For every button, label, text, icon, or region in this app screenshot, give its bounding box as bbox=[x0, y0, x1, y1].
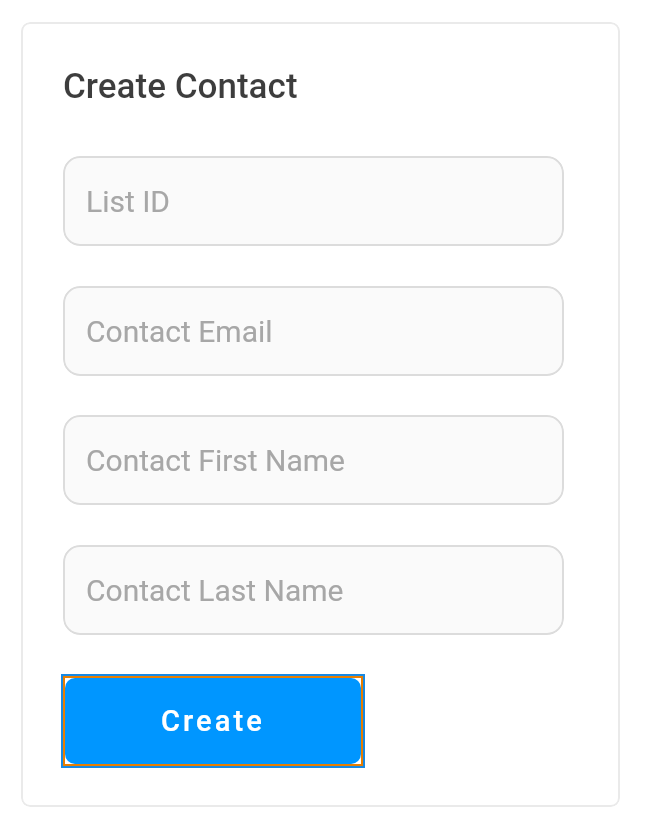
button[interactable]: Contact First Name bbox=[63, 415, 564, 505]
staticText: Create bbox=[161, 704, 265, 738]
button[interactable]: Create bbox=[61, 674, 365, 768]
button[interactable]: List ID bbox=[63, 156, 564, 246]
staticText: Create Contact bbox=[63, 66, 298, 107]
button[interactable]: Contact Email bbox=[63, 286, 564, 376]
staticText: Contact Last Name bbox=[86, 573, 344, 608]
button[interactable]: Contact Last Name bbox=[63, 545, 564, 635]
staticText: List ID bbox=[86, 184, 171, 219]
staticText: Contact Email bbox=[86, 314, 273, 349]
staticText: Contact First Name bbox=[86, 443, 346, 478]
